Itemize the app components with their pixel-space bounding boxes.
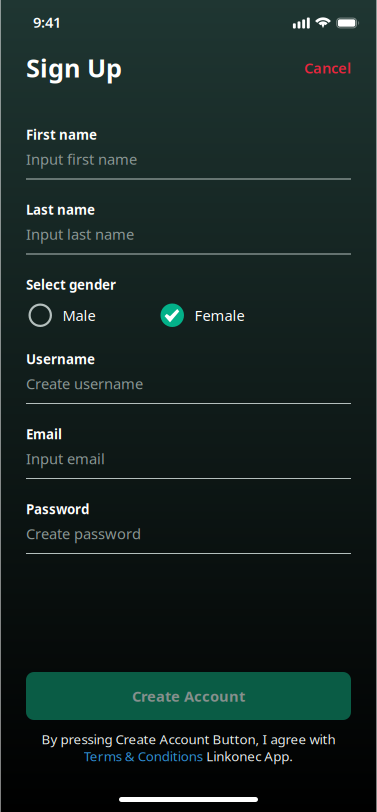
staticText: Last name [26, 201, 95, 218]
staticText: Select gender [26, 276, 116, 293]
staticText: By pressing Create Account Button, I agr… [41, 730, 335, 748]
staticText: Email [26, 425, 62, 443]
button[interactable]: Female [160, 303, 280, 327]
staticText: Linkonec App. [206, 747, 293, 765]
staticText: Username [26, 350, 95, 368]
staticText: Input last name [26, 224, 134, 244]
staticText: Create Account [132, 686, 245, 706]
staticText: Create password [26, 524, 141, 543]
staticText: Create username [26, 374, 143, 393]
staticText: Terms & Conditions [84, 747, 203, 765]
staticText: Input email [26, 449, 105, 468]
button[interactable]: Cancel [290, 52, 351, 83]
button[interactable]: Male [28, 303, 160, 327]
staticText: 9:41 [33, 12, 61, 32]
staticText: Input first name [26, 149, 137, 169]
staticText: First name [26, 126, 97, 143]
staticText: Male [62, 305, 95, 325]
button[interactable]: Terms & Conditions [84, 747, 203, 765]
staticText: Female [194, 305, 244, 325]
button[interactable]: Create Account [26, 672, 351, 720]
staticText: Cancel [304, 58, 351, 77]
staticText: Sign Up [26, 51, 122, 84]
staticText: Password [26, 500, 89, 518]
